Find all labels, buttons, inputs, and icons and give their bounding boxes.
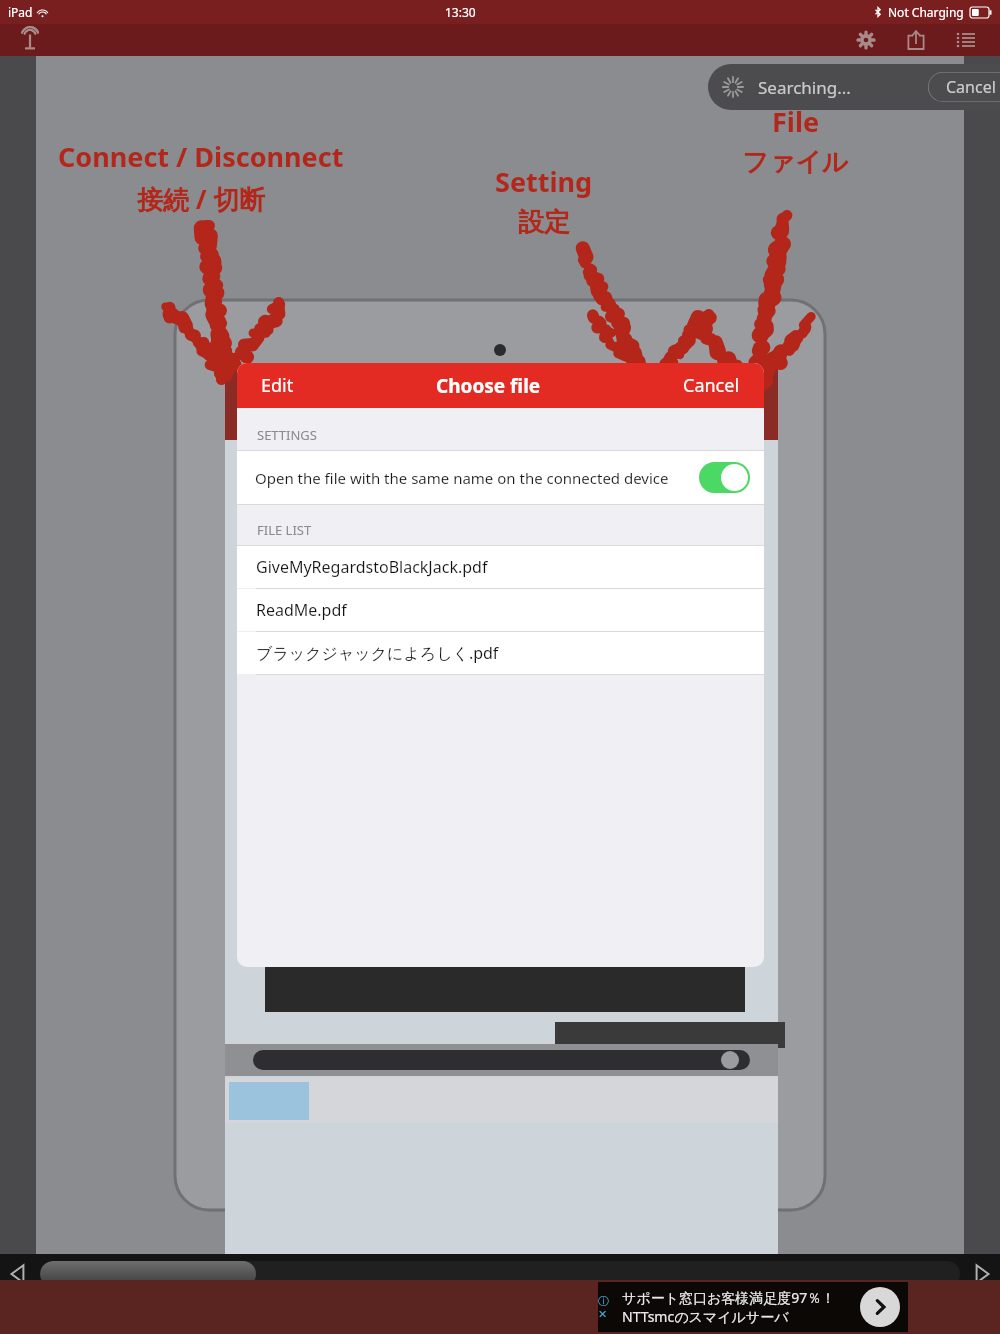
button[interactable]: ⓘ [598, 1282, 908, 1332]
staticText: File [772, 103, 820, 140]
staticText: iPad [8, 4, 33, 20]
staticText: Connect / Disconnect [58, 138, 344, 175]
staticText: Open the file with the same name on the … [255, 468, 691, 488]
button[interactable] [40, 1261, 256, 1287]
button[interactable]: Share [896, 24, 936, 56]
staticText: Searching... [758, 76, 851, 99]
staticText: GiveMyRegardstoBlackJack.pdf [256, 556, 488, 578]
staticText: Edit [261, 373, 294, 398]
staticText: FILE LIST [257, 521, 312, 539]
staticText: Setting [495, 163, 593, 200]
staticText: SETTINGS [257, 426, 317, 444]
staticText: 設定 [518, 206, 570, 239]
button[interactable]: Toggle open same file [699, 462, 750, 493]
staticText: サポート窓口お客様満足度97％！ [622, 1288, 836, 1307]
button[interactable]: Cancel [679, 369, 744, 402]
staticText: Not Charging [888, 4, 964, 20]
staticText: Cancel [946, 76, 996, 98]
staticText: 接続 / 切断 [137, 181, 266, 217]
button[interactable]: ReadMe.pdf [237, 589, 764, 631]
staticText: ⓘ [598, 1294, 609, 1308]
button[interactable]: Cancel [928, 72, 1000, 102]
button[interactable]: Connect [12, 24, 48, 56]
button[interactable]: Settings [846, 24, 886, 56]
staticText: ReadMe.pdf [256, 599, 347, 621]
staticText: 13:30 [445, 4, 476, 20]
staticText: ✕ [598, 1308, 608, 1321]
button[interactable]: GiveMyRegardstoBlackJack.pdf [237, 546, 764, 588]
staticText: Cancel [683, 373, 740, 398]
staticText: ブラックジャックによろしく.pdf [256, 642, 499, 664]
staticText: ファイル [742, 146, 849, 179]
staticText: NTTsmcのスマイルサーバ [622, 1307, 789, 1326]
staticText: Choose file [436, 373, 541, 399]
button[interactable]: Edit [257, 369, 298, 402]
button[interactable]: Open the file with the same name on the … [237, 451, 764, 504]
button[interactable]: File list [946, 24, 986, 56]
button[interactable]: ブラックジャックによろしく.pdf [237, 632, 764, 674]
